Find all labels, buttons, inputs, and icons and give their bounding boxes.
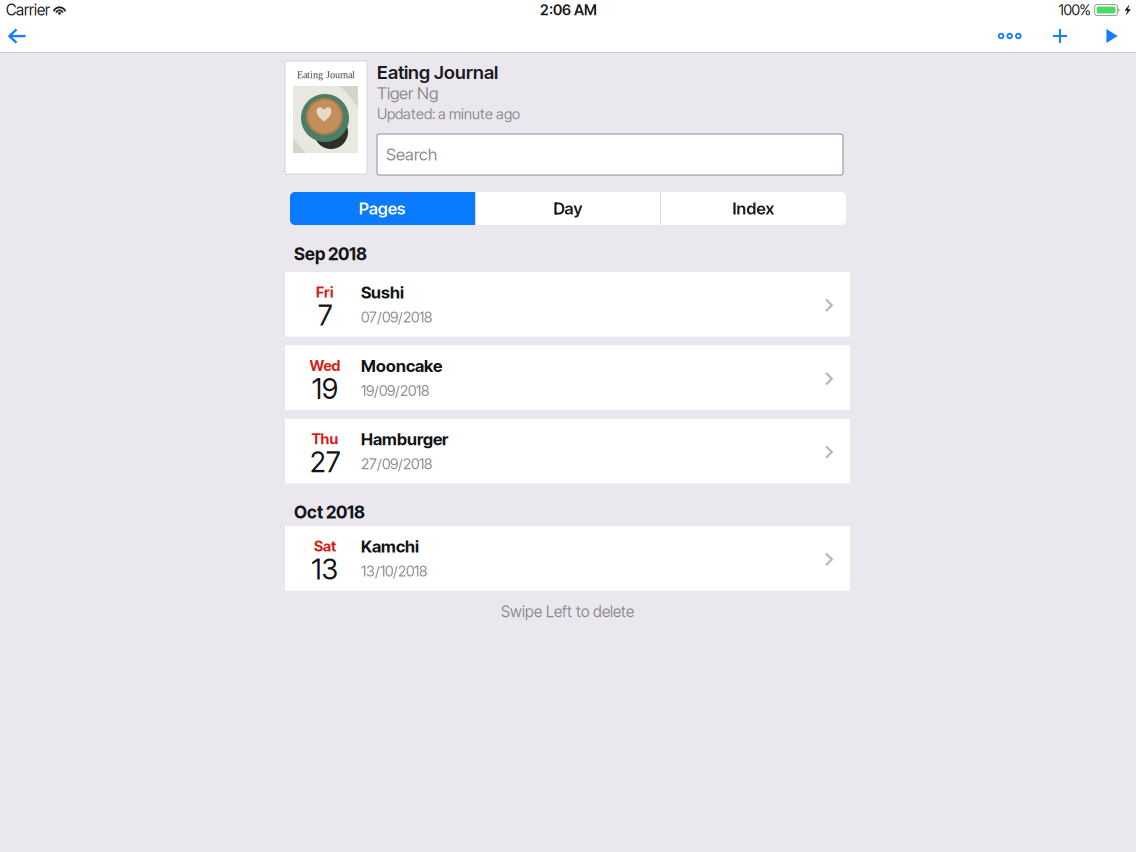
staticText: 19 (312, 372, 338, 406)
staticText: Kamchi (361, 536, 419, 557)
button[interactable]: More options (982, 20, 1037, 52)
staticText: 100% (1059, 1, 1091, 19)
staticText: 7 (318, 298, 332, 332)
button[interactable]: Index (661, 192, 846, 225)
button[interactable]: Wed (285, 345, 850, 410)
staticText: 27 (310, 445, 340, 479)
button[interactable]: Add entry (1037, 20, 1089, 52)
staticText: Oct 2018 (294, 502, 365, 523)
button[interactable]: Search (377, 134, 843, 175)
staticText: Search (386, 144, 437, 165)
staticText: 07/09/2018 (361, 308, 432, 326)
staticText: Swipe Left to delete (501, 602, 634, 621)
button[interactable]: Fri (285, 272, 850, 336)
button[interactable]: Thu (285, 419, 850, 483)
staticText: Updated: a minute ago (377, 105, 520, 123)
staticText: Eating Journal (377, 61, 498, 84)
staticText: Sep 2018 (294, 243, 367, 264)
staticText: 13 (311, 552, 338, 586)
staticText: Sushi (361, 282, 404, 302)
staticText: 2:06 AM (540, 1, 597, 19)
button[interactable]: Play (1089, 20, 1136, 52)
staticText: Carrier (6, 1, 50, 19)
staticText: Eating Journal (297, 69, 355, 81)
staticText: 19/09/2018 (361, 382, 429, 399)
button[interactable]: Day (476, 192, 660, 225)
staticText: Fri (316, 283, 334, 301)
staticText: Hamburger (361, 429, 448, 449)
button[interactable]: Sat (285, 526, 850, 591)
staticText: 27/09/2018 (361, 455, 432, 473)
staticText: 13/10/2018 (361, 562, 427, 580)
button[interactable]: Pages (290, 192, 475, 225)
staticText: Thu (311, 430, 338, 448)
staticText: Mooncake (361, 356, 442, 376)
button[interactable]: Back (0, 20, 34, 52)
staticText: Sat (314, 537, 336, 555)
staticText: Index (732, 198, 774, 219)
staticText: Tiger Ng (377, 83, 438, 103)
staticText: Pages (359, 198, 406, 219)
staticText: Day (553, 198, 582, 219)
staticText: Wed (309, 357, 340, 374)
